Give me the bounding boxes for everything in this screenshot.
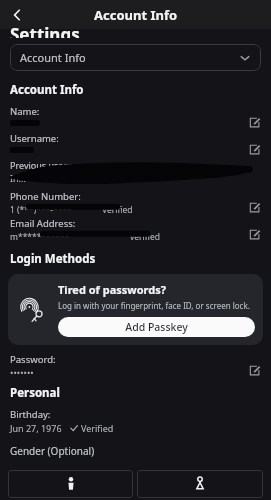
- staticText: Birthday:: [10, 408, 51, 421]
- button[interactable]: Back: [4, 2, 30, 28]
- staticText: In...: [10, 172, 26, 184]
- staticText: Verified: [102, 204, 133, 216]
- button[interactable]: Edit: [245, 113, 263, 131]
- staticText: Jun 27, 1976: [10, 422, 62, 434]
- staticText: Gender (Optional): [10, 444, 95, 458]
- button[interactable]: Edit: [245, 361, 263, 379]
- staticText: 1 (***)***-****: [10, 204, 72, 216]
- staticText: Account Info: [10, 82, 84, 98]
- button[interactable]: Edit: [245, 225, 263, 243]
- staticText: Account Info: [20, 50, 86, 65]
- staticText: Password:: [10, 353, 56, 366]
- button[interactable]: Male: [8, 470, 133, 498]
- button[interactable]: Female: [137, 470, 263, 498]
- staticText: Log in with your fingerprint, face ID, o…: [58, 300, 250, 311]
- staticText: Personal: [10, 385, 60, 401]
- button[interactable]: Edit: [245, 140, 263, 158]
- staticText: verified: [130, 231, 160, 243]
- staticText: Phone Number:: [10, 190, 81, 203]
- staticText: Settings: [10, 23, 80, 38]
- staticText: Login Methods: [10, 251, 96, 267]
- staticText: Account Info: [94, 6, 178, 24]
- staticText: m***********: [10, 231, 70, 243]
- staticText: Name:: [10, 105, 40, 118]
- button[interactable]: Edit: [245, 198, 263, 216]
- staticText: Email Address:: [10, 217, 76, 230]
- staticText: Verified: [81, 422, 114, 434]
- staticText: Username:: [10, 132, 59, 145]
- staticText: Tired of passwords?: [58, 282, 166, 297]
- staticText: Previous usernames:: [10, 159, 98, 171]
- button[interactable]: Account Info: [10, 44, 261, 71]
- button[interactable]: Add Passkey: [58, 317, 255, 337]
- staticText: Add Passkey: [125, 320, 188, 334]
- staticText: •••••••: [10, 366, 34, 378]
